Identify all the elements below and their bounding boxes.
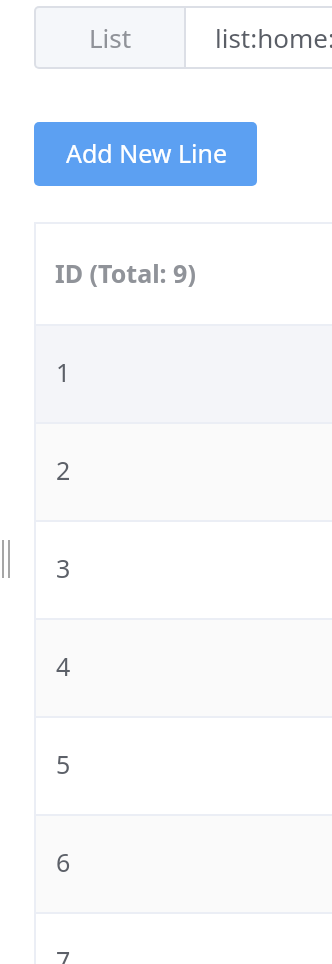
staticText: Add New Line: [66, 136, 228, 170]
button[interactable]: list:home:index: [186, 8, 332, 67]
staticText: 7: [56, 943, 71, 964]
button[interactable]: 7: [36, 914, 332, 964]
button[interactable]: 6: [36, 816, 332, 912]
staticText: 6: [56, 845, 71, 879]
button[interactable]: 1: [36, 326, 332, 422]
staticText: 4: [56, 649, 71, 683]
button[interactable]: Resize panel: [2, 540, 10, 578]
staticText: 2: [56, 453, 71, 487]
button[interactable]: 5: [36, 718, 332, 814]
button[interactable]: Add New Line: [34, 122, 257, 186]
button[interactable]: 4: [36, 620, 332, 716]
staticText: 5: [56, 747, 71, 781]
button[interactable]: 3: [36, 522, 332, 618]
staticText: 1: [56, 355, 71, 389]
staticText: ID (Total: 9): [55, 256, 196, 290]
staticText: 3: [56, 551, 71, 585]
staticText: List: [89, 20, 132, 55]
button[interactable]: 2: [36, 424, 332, 520]
button[interactable]: List: [36, 8, 184, 67]
staticText: list:home:index: [215, 20, 332, 55]
